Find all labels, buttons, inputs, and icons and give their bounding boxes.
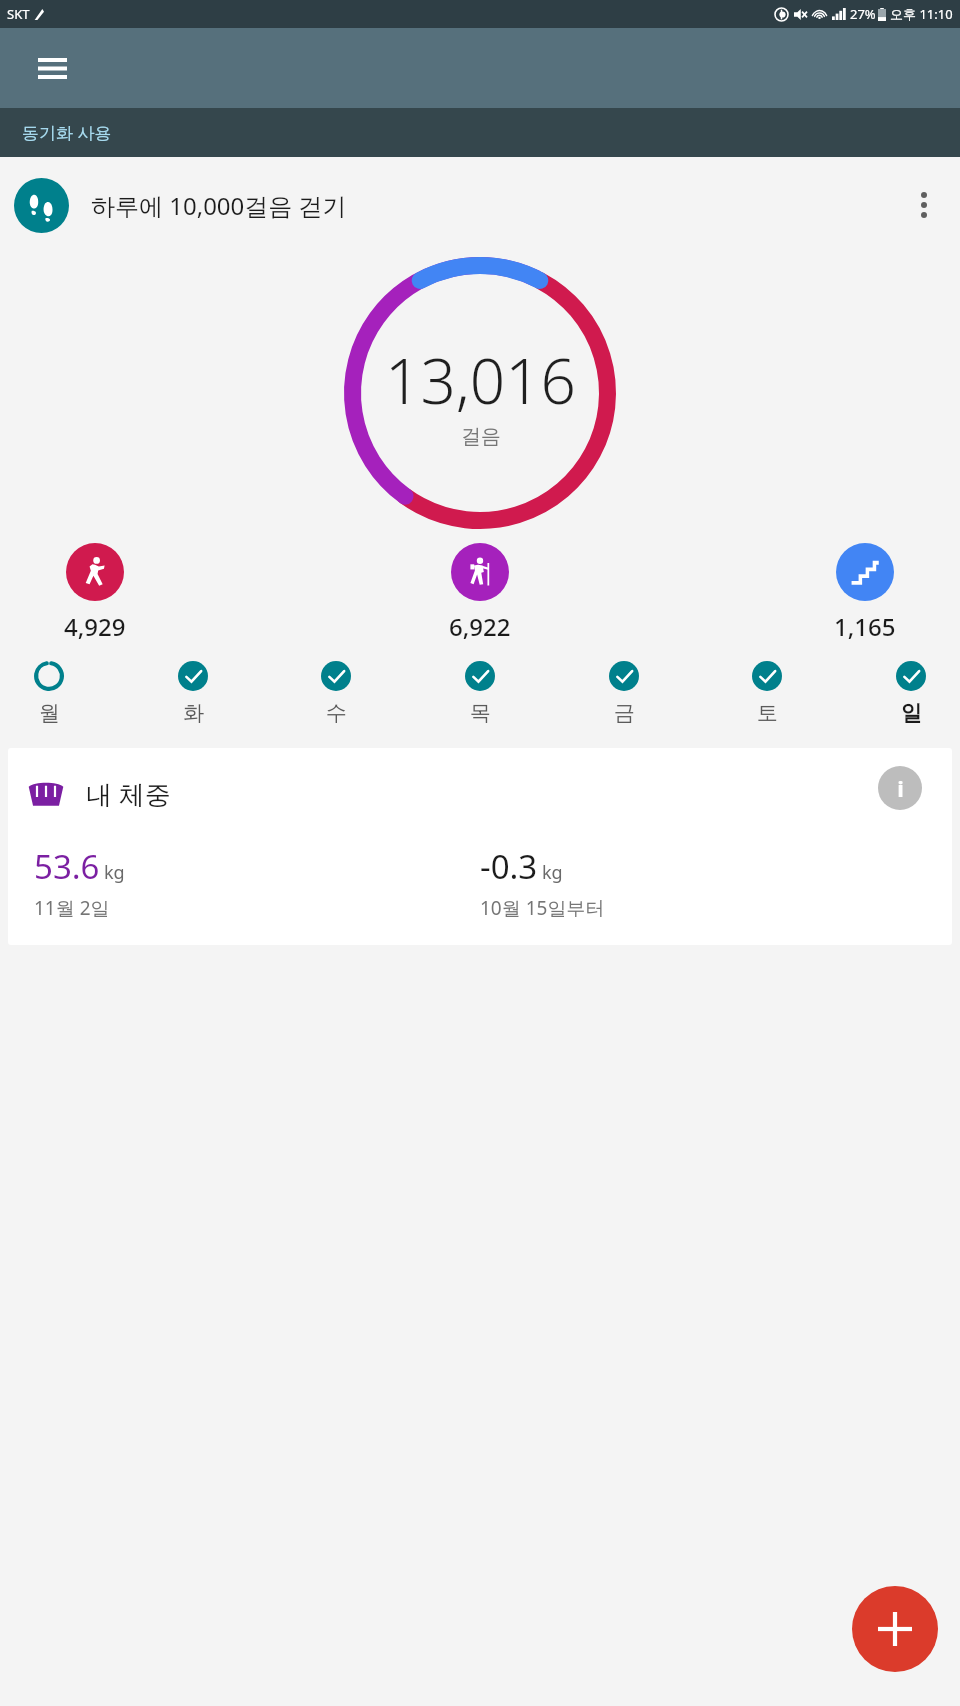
button[interactable]: Open navigation menu [28,44,76,92]
staticText: 내 체중 [86,776,171,812]
staticText: kg [542,860,563,885]
button[interactable]: 금 [609,661,639,726]
staticText: 토 [757,700,778,726]
button[interactable]: 수 [321,661,351,726]
button[interactable]: 6,922 [449,543,511,643]
staticText: SKT [7,5,30,23]
button[interactable]: Add [852,1586,938,1672]
staticText: 오후 11:10 [890,5,953,23]
staticText: 4,929 [64,610,126,643]
staticText: 화 [183,700,204,726]
button[interactable]: Information [878,766,922,810]
staticText: 월 [39,700,60,726]
staticText: 27% [850,5,876,23]
button[interactable]: 4,929 [64,543,126,643]
staticText: 6,922 [449,610,511,643]
button[interactable]: 목 [465,661,495,726]
staticText: -0.3 [480,844,538,889]
button[interactable]: 일 [896,661,926,726]
staticText: 1,165 [834,610,896,643]
staticText: 일 [901,700,922,726]
button[interactable]: 내 체중 [8,748,952,945]
button[interactable]: 1,165 [834,543,896,643]
staticText: 동기화 사용 [22,121,112,144]
staticText: 걸음 [461,424,501,449]
staticText: 11월 2일 [34,895,110,921]
button[interactable]: More options [902,183,946,227]
staticText: 13,016 [385,338,576,422]
staticText: i [897,773,904,803]
staticText: kg [104,860,125,885]
staticText: 하루에 10,000걸음 걷기 [91,189,347,222]
staticText: 수 [326,700,347,726]
button[interactable]: 화 [178,661,208,726]
button[interactable]: 동기화 사용 [0,108,960,157]
staticText: 목 [470,700,491,726]
staticText: 10월 15일부터 [480,895,605,921]
button[interactable]: 토 [752,661,782,726]
staticText: 53.6 [34,844,100,889]
staticText: 금 [614,700,635,726]
button[interactable]: 월 [34,661,64,726]
